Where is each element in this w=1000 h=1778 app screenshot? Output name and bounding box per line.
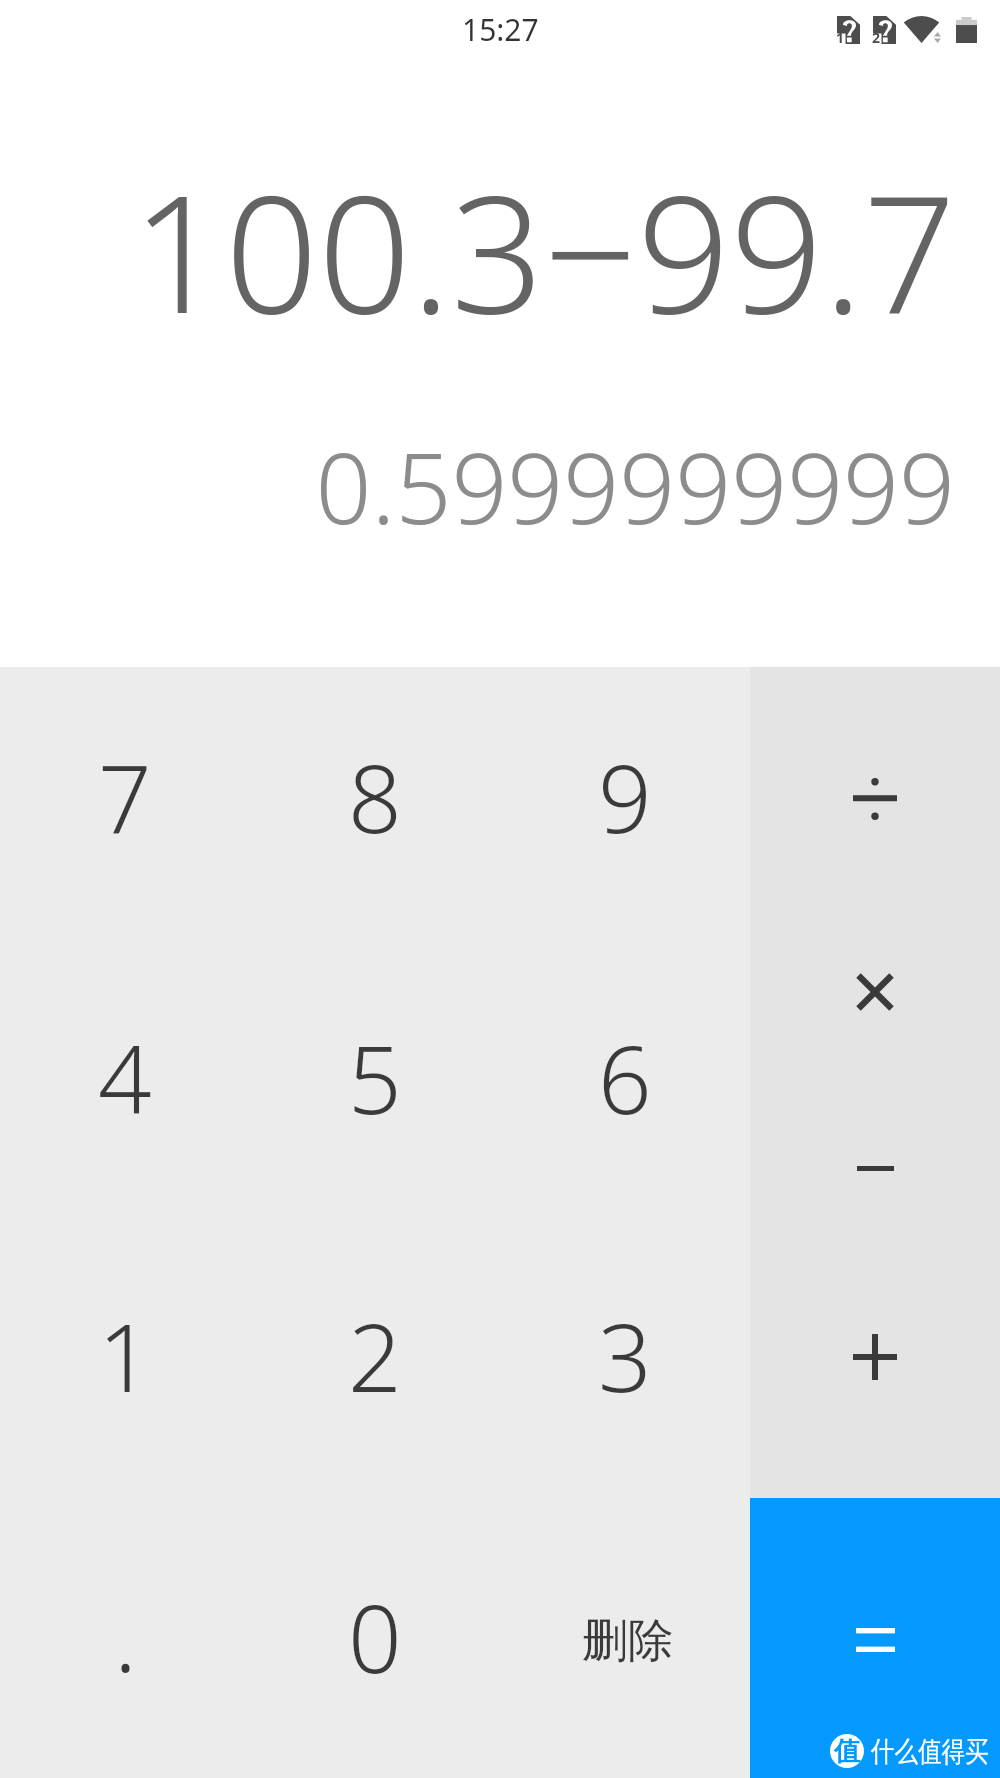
button[interactable]: 4	[0, 944, 250, 1222]
button[interactable]: 2	[250, 1222, 500, 1500]
staticText: 2	[348, 1292, 402, 1420]
staticText: 8	[348, 733, 402, 861]
button[interactable]: Subtract	[750, 1086, 1000, 1278]
staticText: 2	[872, 28, 881, 47]
button[interactable]: 删除	[500, 1500, 750, 1778]
staticText: 0.5999999999	[0, 419, 955, 552]
staticText: 值	[834, 1735, 860, 1768]
button[interactable]: Add	[750, 1278, 1000, 1470]
staticText: 3	[598, 1292, 652, 1420]
button[interactable]: 7	[0, 667, 250, 944]
button[interactable]: 0	[250, 1500, 500, 1778]
button[interactable]: Equals	[750, 1498, 1000, 1778]
staticText: 1	[836, 28, 845, 47]
staticText: 什么值得买	[871, 1734, 989, 1769]
button[interactable]: Multiply	[750, 894, 1000, 1086]
staticText: 0	[348, 1573, 402, 1701]
button[interactable]: 6	[500, 944, 750, 1222]
staticText: 5	[348, 1014, 402, 1142]
button[interactable]: Divide	[750, 702, 1000, 894]
button[interactable]: 1	[0, 1222, 250, 1500]
button[interactable]: 3	[500, 1222, 750, 1500]
button[interactable]: 8	[250, 667, 500, 944]
button[interactable]: 5	[250, 944, 500, 1222]
staticText: 100.3−99.7	[0, 139, 956, 361]
staticText: 4	[98, 1014, 152, 1142]
button[interactable]: 9	[500, 667, 750, 944]
staticText: 6	[598, 1014, 652, 1142]
staticText: .	[114, 1572, 137, 1700]
staticText: 9	[598, 733, 652, 861]
staticText: 删除	[582, 1612, 674, 1670]
staticText: 7	[98, 733, 152, 861]
staticText: 15:27	[462, 9, 539, 50]
staticText: 1	[98, 1292, 152, 1420]
button[interactable]: Decimal point	[0, 1500, 250, 1778]
